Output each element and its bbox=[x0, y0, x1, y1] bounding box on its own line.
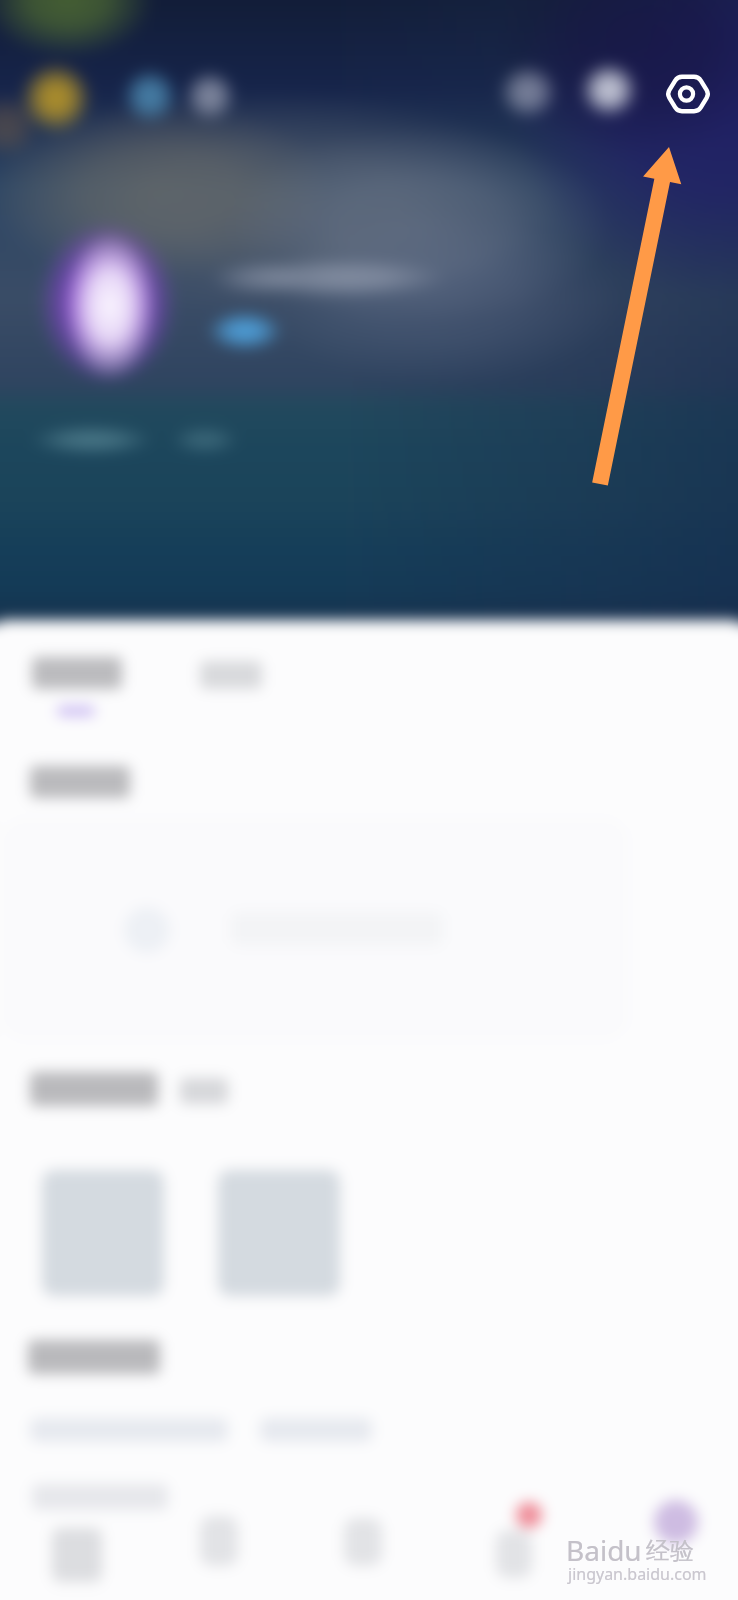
button[interactable]: Messages bbox=[344, 1518, 382, 1566]
button[interactable] bbox=[218, 1170, 340, 1296]
button[interactable]: Library bbox=[496, 1530, 532, 1578]
button[interactable]: Discover bbox=[200, 1516, 238, 1566]
button[interactable]: Home bbox=[52, 1528, 102, 1582]
button[interactable]: Settings bbox=[663, 69, 713, 119]
staticText: 经验 bbox=[646, 1536, 694, 1566]
button[interactable]: Profile bbox=[654, 1500, 698, 1544]
staticText: jingyan.baidu.com bbox=[568, 1563, 707, 1585]
button[interactable] bbox=[42, 1170, 164, 1296]
staticText: Baidu bbox=[566, 1531, 642, 1569]
